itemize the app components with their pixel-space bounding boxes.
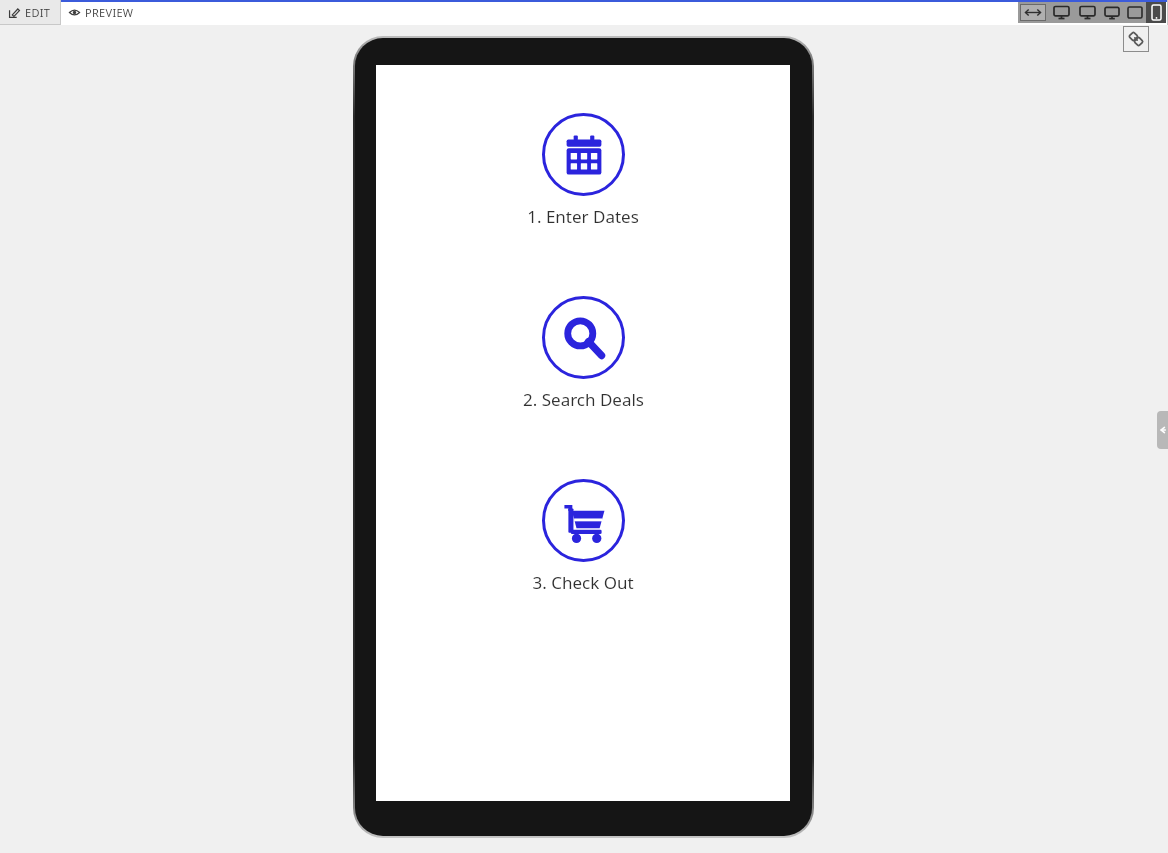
button[interactable]: 1. Enter Dates bbox=[519, 113, 647, 228]
button[interactable]: Desktop medium bbox=[1074, 2, 1100, 23]
button[interactable]: Desktop small bbox=[1100, 2, 1124, 23]
button[interactable]: Phone bbox=[1146, 2, 1166, 23]
button[interactable]: 3. Check Out bbox=[524, 479, 642, 594]
staticText: 1. Enter Dates bbox=[527, 205, 639, 228]
button[interactable]: Toggle interactive mode bbox=[1123, 26, 1149, 52]
button[interactable]: EDIT bbox=[0, 0, 60, 25]
button[interactable]: Expand panel bbox=[1157, 411, 1168, 449]
button[interactable]: 2. Search Deals bbox=[515, 296, 652, 411]
button[interactable]: Fit width bbox=[1020, 4, 1046, 21]
button[interactable]: PREVIEW bbox=[60, 0, 1168, 25]
staticText: EDIT bbox=[25, 5, 51, 20]
button[interactable]: Desktop large bbox=[1048, 2, 1074, 23]
staticText: 3. Check Out bbox=[532, 571, 634, 594]
staticText: PREVIEW bbox=[85, 5, 134, 20]
button[interactable]: Tablet bbox=[1124, 2, 1146, 23]
staticText: 2. Search Deals bbox=[523, 388, 644, 411]
